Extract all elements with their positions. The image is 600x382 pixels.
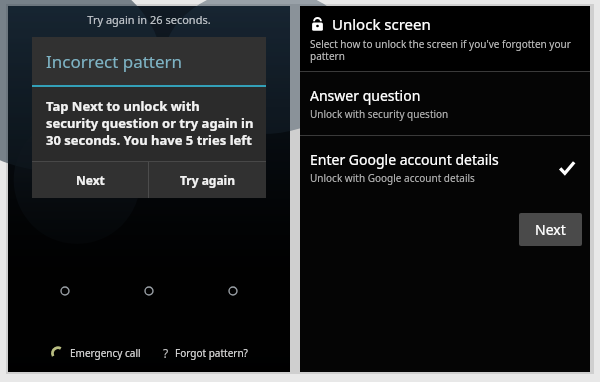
button[interactable]: Next (519, 213, 582, 246)
button[interactable]: Emergency call (47, 343, 145, 363)
staticText: Forgot pattern? (175, 346, 248, 360)
staticText: Try again (180, 172, 236, 188)
other: Selected (558, 159, 576, 177)
other: Lock (310, 17, 325, 32)
button[interactable]: Enter Google account details (300, 136, 590, 199)
button[interactable]: Answer question (300, 72, 590, 135)
button[interactable]: Try again (149, 162, 266, 198)
staticText: Unlock screen (332, 14, 431, 34)
staticText: Enter Google account details (310, 150, 499, 169)
staticText: ? (163, 345, 169, 361)
staticText: Try again in 26 seconds. (8, 12, 290, 27)
button[interactable]: Next (32, 162, 148, 198)
staticText: Next (535, 220, 566, 239)
staticText: Unlock with Google account details (310, 171, 475, 185)
staticText: Next (76, 172, 105, 188)
staticText: Answer question (310, 86, 421, 105)
staticText: Incorrect pattern (46, 50, 183, 73)
staticText: Select how to unlock the screen if you'v… (310, 37, 580, 63)
staticText: Tap Next to unlock with security questio… (46, 97, 254, 149)
staticText: Unlock with security question (310, 107, 449, 121)
button[interactable]: ? (159, 342, 252, 364)
staticText: Emergency call (70, 346, 141, 360)
